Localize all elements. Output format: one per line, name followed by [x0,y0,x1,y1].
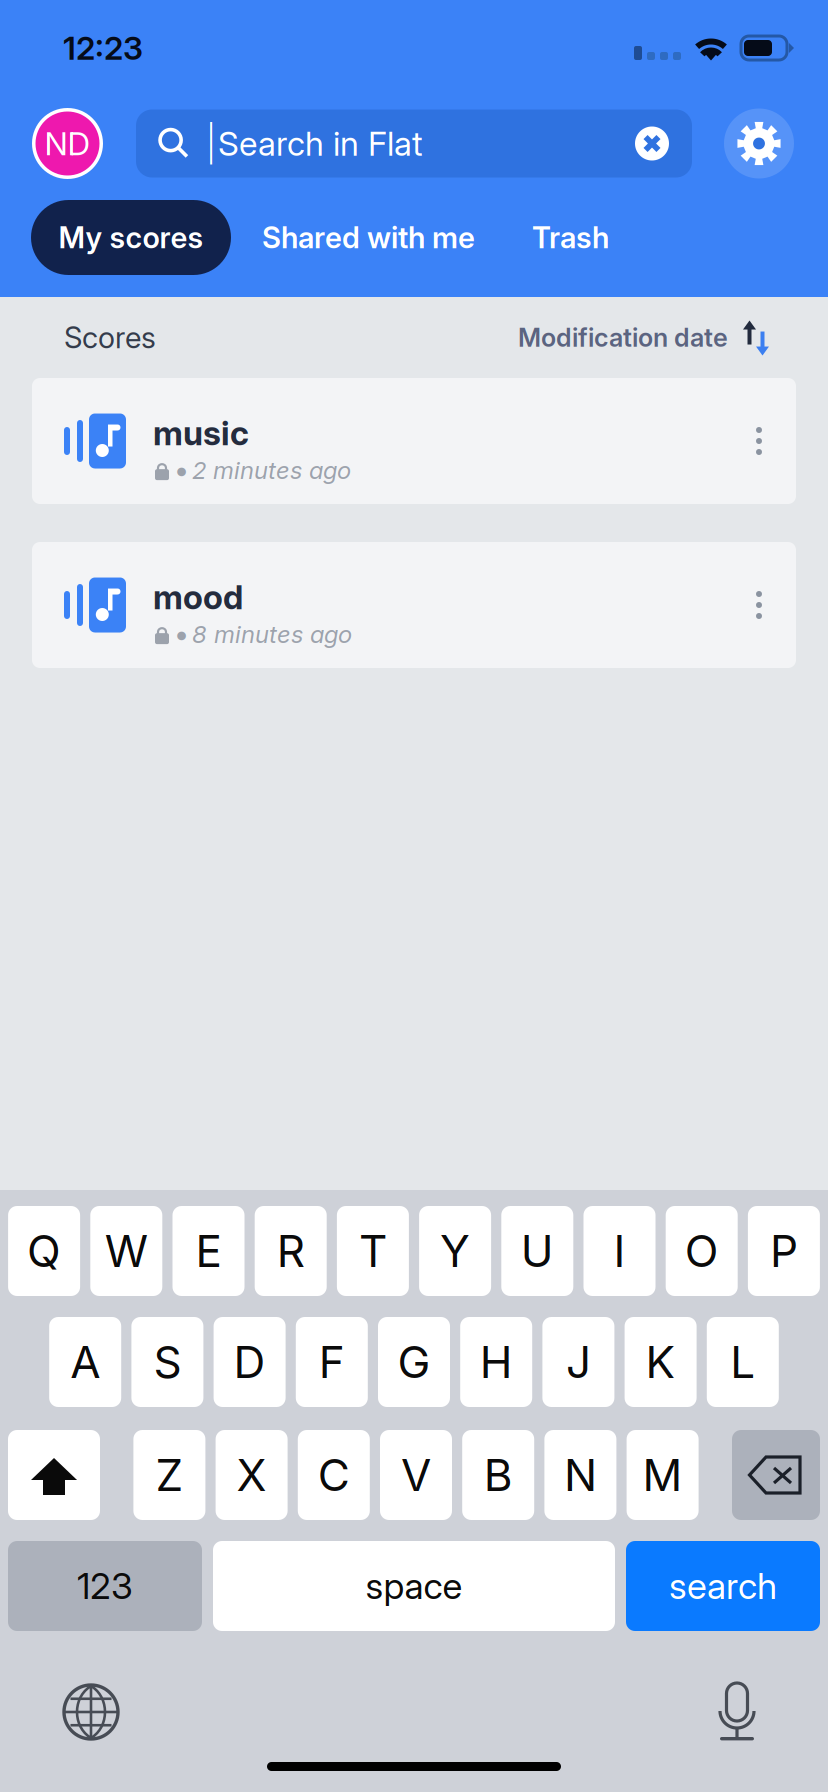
staticText: My scores [58,220,203,255]
button[interactable]: K [625,1317,697,1407]
button[interactable]: U [501,1206,573,1296]
staticText: Modification date [518,322,728,353]
button[interactable]: M [627,1430,699,1520]
staticText: A [70,1335,100,1389]
staticText: H [480,1335,513,1389]
staticText: 2 minutes ago [192,456,351,485]
staticText: V [401,1448,431,1502]
staticText: R [277,1224,305,1278]
button[interactable]: Next keyboard [64,1685,118,1739]
staticText: W [105,1224,148,1278]
staticText: Scores [64,320,156,355]
staticText: I [613,1224,625,1278]
staticText: • [174,453,189,487]
button[interactable]: O [666,1206,738,1296]
button[interactable]: Delete [732,1430,820,1520]
button[interactable]: H [460,1317,532,1407]
staticText: mood [153,577,243,617]
staticText: • [174,617,189,651]
staticText: S [153,1335,181,1389]
button[interactable]: D [214,1317,286,1407]
button[interactable]: G [378,1317,450,1407]
button[interactable]: E [172,1206,244,1296]
staticText: ND [44,124,90,163]
staticText: D [234,1335,266,1389]
button[interactable]: Z [133,1430,205,1520]
button[interactable]: mood [32,542,796,668]
staticText: Z [155,1448,183,1502]
button[interactable]: My scores [31,200,231,275]
button[interactable]: L [707,1317,779,1407]
button[interactable]: I [583,1206,655,1296]
button[interactable]: B [462,1430,534,1520]
staticText: search [669,1564,777,1608]
button[interactable]: Account [32,108,103,179]
staticText: B [484,1448,513,1502]
staticText: U [521,1224,554,1278]
button[interactable]: P [748,1206,820,1296]
staticText: P [770,1224,798,1278]
staticText: G [397,1335,430,1389]
staticText: C [318,1448,350,1502]
button[interactable]: Settings [724,108,794,178]
button[interactable]: music [32,378,796,504]
staticText: T [359,1224,387,1278]
staticText: E [195,1224,221,1278]
button[interactable]: A [49,1317,121,1407]
button[interactable]: S [131,1317,203,1407]
staticText: Q [27,1224,61,1278]
button[interactable]: N [544,1430,616,1520]
staticText: Shared with me [262,220,475,255]
button[interactable]: Shift [8,1430,100,1520]
staticText: Search in Flat [218,123,423,164]
button[interactable]: W [90,1206,162,1296]
staticText: Y [440,1224,470,1278]
staticText: O [685,1224,719,1278]
staticText: Trash [532,220,609,255]
staticText: | [206,122,216,165]
staticText: J [566,1335,591,1389]
staticText: K [646,1335,676,1389]
staticText: music [153,413,249,453]
button[interactable]: Y [419,1206,491,1296]
staticText: X [237,1448,267,1502]
button[interactable]: C [298,1430,370,1520]
staticText: N [564,1448,597,1502]
button[interactable]: F [296,1317,368,1407]
button[interactable]: J [542,1317,614,1407]
button[interactable]: | [136,109,692,177]
staticText: 123 [77,1564,133,1608]
button[interactable]: Q [8,1206,80,1296]
button[interactable]: V [380,1430,452,1520]
button[interactable]: Trash [517,200,624,275]
staticText: M [643,1448,683,1502]
staticText: L [730,1335,755,1389]
button[interactable]: 123 [8,1541,202,1631]
button[interactable]: X [216,1430,288,1520]
button[interactable]: T [337,1206,409,1296]
button[interactable]: Shared with me [247,200,490,275]
button[interactable]: Modification date [518,318,828,356]
button[interactable]: R [255,1206,327,1296]
button[interactable]: space [213,1541,615,1631]
button[interactable]: search [626,1541,820,1631]
staticText: 8 minutes ago [192,620,352,649]
staticText: 12:23 [63,29,143,67]
staticText: space [365,1564,462,1608]
button[interactable]: Dictate [718,1683,756,1741]
staticText: F [319,1335,345,1389]
